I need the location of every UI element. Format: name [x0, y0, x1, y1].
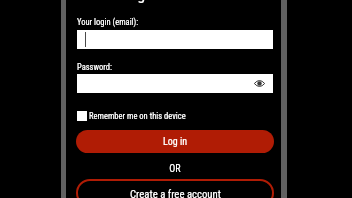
- button[interactable]: [77, 30, 273, 49]
- button[interactable]: Log in: [76, 130, 274, 153]
- staticText: Remember me on this device: [89, 111, 186, 121]
- staticText: Login: [40, 0, 238, 4]
- button[interactable]: Show password: [250, 74, 269, 93]
- staticText: Log in: [163, 136, 188, 148]
- button[interactable]: Create a free account: [76, 179, 274, 198]
- button[interactable]: [77, 74, 273, 93]
- staticText: OR: [76, 163, 274, 175]
- staticText: Password:: [77, 62, 112, 72]
- staticText: Your login (email):: [77, 17, 139, 27]
- staticText: Create a free account: [130, 188, 221, 198]
- button[interactable]: Remember me on this device: [77, 109, 193, 123]
